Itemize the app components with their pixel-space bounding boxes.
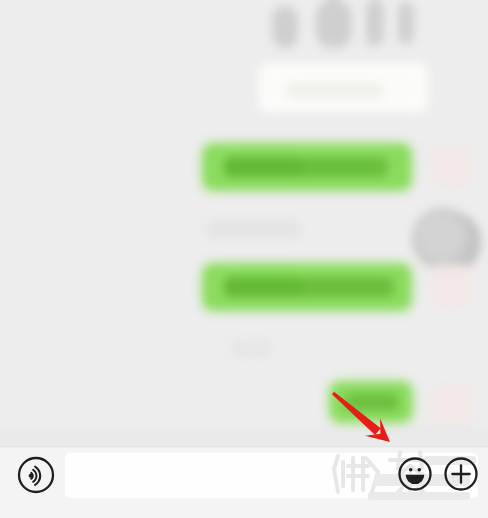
button[interactable]: Message input [65,453,395,498]
button[interactable]: Emoji [397,456,433,492]
button[interactable]: Voice input [16,455,56,495]
button[interactable]: More functions [443,456,479,492]
